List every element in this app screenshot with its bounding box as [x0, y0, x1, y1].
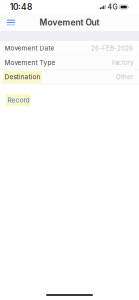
staticText: Destination: [4, 73, 40, 81]
staticText: Other: [116, 73, 133, 81]
staticText: 10:48: [10, 2, 32, 12]
staticText: 4G: [108, 3, 118, 11]
staticText: Movement Out: [39, 17, 99, 28]
staticText: Movement Type: [4, 59, 55, 66]
staticText: 26-FEB-2026: [91, 44, 133, 52]
button[interactable]: Menu: [4, 14, 17, 31]
staticText: Movement Date: [4, 44, 54, 52]
button[interactable]: Movement Date: [0, 41, 139, 55]
staticText: Record: [7, 96, 29, 104]
staticText: Factory: [112, 59, 133, 66]
button[interactable]: Record: [0, 84, 139, 106]
button[interactable]: Destination: [0, 70, 139, 84]
button[interactable]: Movement Type: [0, 55, 139, 70]
